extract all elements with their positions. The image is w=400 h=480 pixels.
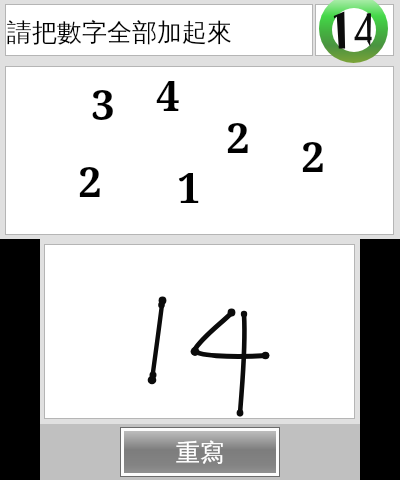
staticText: 重寫 xyxy=(176,438,224,468)
staticText: 2 xyxy=(226,108,250,165)
staticText: 1 xyxy=(177,158,201,215)
staticText: 3 xyxy=(91,75,115,132)
button[interactable]: 重寫 xyxy=(124,431,276,473)
button[interactable]: Score 14 xyxy=(315,4,394,56)
staticText: 2 xyxy=(301,127,325,184)
staticText: 請把數字全部加起來 xyxy=(7,17,232,48)
staticText: 4 xyxy=(156,66,180,123)
staticText: 2 xyxy=(78,152,102,209)
button[interactable]: Handwriting input area xyxy=(44,244,355,419)
